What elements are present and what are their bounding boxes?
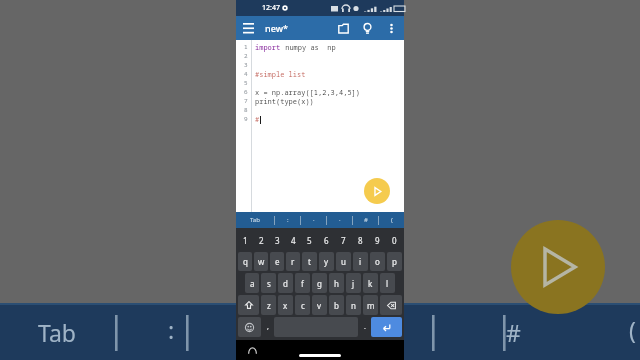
button[interactable]: e	[270, 252, 284, 271]
staticText: g	[317, 278, 322, 289]
staticText: 5	[307, 235, 312, 246]
button[interactable]: 4	[285, 230, 301, 251]
button[interactable]: f	[295, 273, 310, 293]
button[interactable]: 8	[352, 230, 369, 251]
staticText: Tab	[250, 216, 260, 224]
button[interactable]: Shift	[238, 295, 259, 315]
button[interactable]: z	[261, 295, 276, 315]
button[interactable]: p	[387, 252, 402, 271]
button[interactable]: (	[379, 212, 404, 228]
button[interactable]: ·	[301, 212, 326, 228]
staticText: 2	[244, 52, 248, 60]
button[interactable]: 9	[369, 230, 386, 251]
staticText: q	[243, 256, 248, 267]
button[interactable]: r	[286, 252, 300, 271]
button[interactable]: a	[245, 273, 259, 293]
staticText: 5	[244, 79, 248, 87]
button[interactable]: import	[255, 43, 404, 212]
button[interactable]: .	[359, 316, 370, 338]
button[interactable]: 3	[269, 230, 285, 251]
button[interactable]: k	[363, 273, 378, 293]
staticText: (	[391, 216, 393, 224]
button[interactable]: w	[254, 252, 268, 271]
button[interactable]: g	[312, 273, 327, 293]
button[interactable]: new*	[265, 22, 288, 34]
button[interactable]: 2	[253, 230, 269, 251]
button[interactable]: Enter	[371, 317, 402, 337]
button[interactable]: :	[275, 212, 300, 228]
button[interactable]: 7	[335, 230, 352, 251]
staticText: y	[324, 256, 329, 267]
button[interactable]: l	[380, 273, 395, 293]
button[interactable]: m	[363, 295, 378, 315]
button[interactable]: d	[278, 273, 293, 293]
staticText: p	[392, 256, 397, 267]
staticText: 4	[291, 235, 296, 246]
button[interactable]: Hints	[355, 16, 379, 40]
staticText: t	[308, 256, 311, 267]
staticText: numpy as np	[281, 43, 336, 52]
staticText: 12:47	[262, 3, 280, 13]
button[interactable]: ,	[262, 316, 273, 338]
staticText: x	[283, 300, 288, 311]
button[interactable]: i	[353, 252, 368, 271]
button[interactable]: j	[346, 273, 361, 293]
button[interactable]: 5	[301, 230, 318, 251]
staticText: :	[287, 216, 289, 224]
staticText: z	[267, 300, 271, 311]
button[interactable]: Back	[244, 342, 260, 358]
button[interactable]: Menu	[236, 16, 260, 40]
staticText: 1	[244, 43, 248, 51]
button[interactable]: v	[312, 295, 327, 315]
button[interactable]: 6	[318, 230, 335, 251]
button[interactable]: Emoji	[238, 317, 261, 337]
button[interactable]: y	[319, 252, 334, 271]
button[interactable]: Home	[299, 354, 341, 357]
button[interactable]: u	[336, 252, 351, 271]
staticText: 6	[244, 88, 248, 96]
staticText: 7	[244, 97, 248, 105]
button[interactable]: c	[295, 295, 310, 315]
button[interactable]: t	[302, 252, 317, 271]
button[interactable]: Tab	[236, 212, 274, 228]
button[interactable]: n	[346, 295, 361, 315]
staticText: .	[364, 322, 366, 332]
button[interactable]: s	[261, 273, 276, 293]
staticText: ·	[313, 216, 315, 224]
staticText: ·	[339, 216, 341, 224]
button[interactable]: q	[238, 252, 252, 271]
staticText: 9	[244, 115, 248, 123]
staticText: #	[364, 216, 368, 224]
staticText: 9	[375, 235, 380, 246]
staticText: :	[168, 314, 175, 345]
button[interactable]: o	[370, 252, 385, 271]
button[interactable]: Run	[364, 178, 390, 204]
staticText: #	[506, 317, 521, 348]
staticText: e	[275, 256, 280, 267]
button[interactable]: Backspace	[380, 295, 402, 315]
button[interactable]: b	[329, 295, 344, 315]
staticText: #simple list	[255, 70, 306, 79]
staticText: 8	[358, 235, 363, 246]
staticText: f	[301, 278, 304, 289]
button[interactable]: 0	[386, 230, 403, 251]
staticText: n	[351, 300, 356, 311]
staticText: i	[359, 256, 362, 267]
button[interactable]: #	[353, 212, 378, 228]
button[interactable]: x	[278, 295, 293, 315]
staticText: c	[301, 300, 305, 311]
button[interactable]: h	[329, 273, 344, 293]
staticText: l	[386, 278, 389, 289]
button[interactable]: 1	[237, 230, 253, 251]
button[interactable]: Open folder	[331, 16, 355, 40]
staticText: m	[367, 300, 375, 311]
staticText: b	[334, 300, 339, 311]
staticText: print(type(x))	[255, 97, 314, 106]
staticText: 8	[244, 106, 248, 114]
button[interactable]: More options	[379, 16, 403, 40]
staticText: j	[352, 278, 355, 289]
staticText: 0	[392, 235, 397, 246]
staticText: 3	[244, 61, 248, 69]
button[interactable]: ·	[327, 212, 352, 228]
